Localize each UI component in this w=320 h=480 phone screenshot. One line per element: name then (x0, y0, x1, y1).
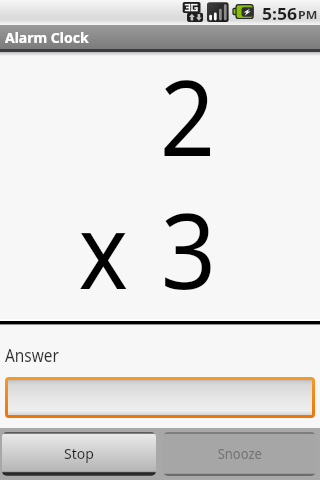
staticText: x (13, 178, 128, 320)
staticText: 3 (15, 178, 216, 320)
staticText: Alarm Clock (5, 28, 89, 47)
staticText: Snooze (218, 444, 262, 463)
staticText: Answer (5, 343, 59, 368)
button[interactable]: Snooze (163, 432, 316, 476)
staticText: 2 (15, 45, 215, 187)
staticText: 5:56 (262, 3, 297, 25)
button[interactable]: Answer input (8, 380, 312, 415)
staticText: PM (298, 7, 318, 22)
button[interactable]: Stop (2, 432, 156, 476)
staticText: Stop (64, 444, 94, 463)
